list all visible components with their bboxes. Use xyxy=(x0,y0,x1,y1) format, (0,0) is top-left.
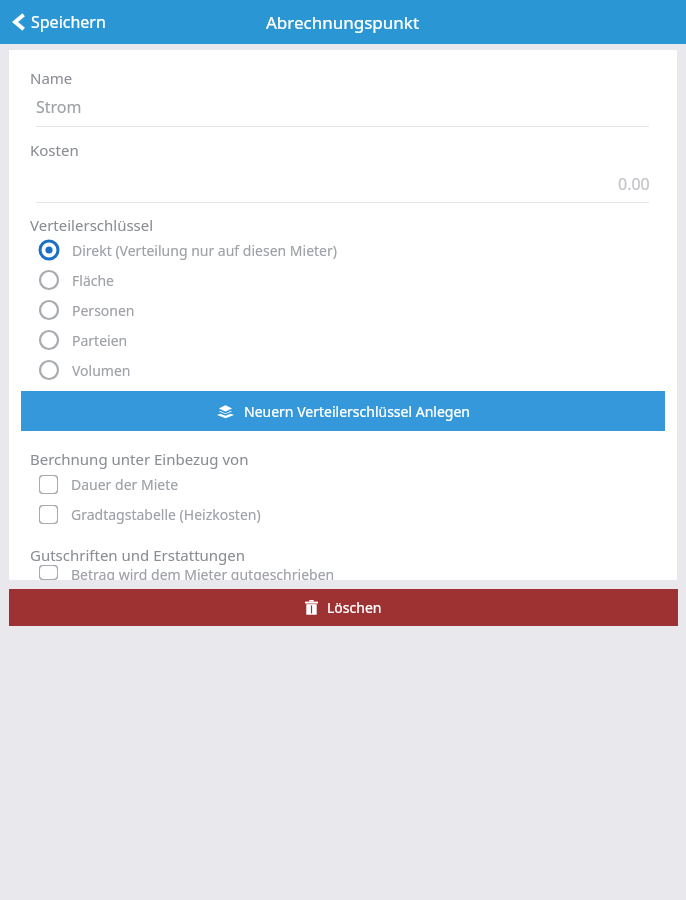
staticText: Name xyxy=(30,68,73,88)
staticText: Neuern Verteilerschlüssel Anlegen xyxy=(244,402,470,421)
staticText: Personen xyxy=(72,301,135,320)
staticText: Volumen xyxy=(72,361,131,380)
staticText: Speichern xyxy=(31,11,106,33)
staticText: Fläche xyxy=(72,271,114,290)
staticText: Abrechnungspunkt xyxy=(266,11,420,34)
button[interactable]: Volumen xyxy=(9,355,677,385)
button[interactable]: Layers xyxy=(21,391,665,431)
staticText: Berchnung unter Einbezug von xyxy=(30,449,249,469)
button[interactable]: Fläche xyxy=(9,265,677,295)
button[interactable]: Speichern xyxy=(9,5,110,39)
staticText: Gutschriften und Erstattungen xyxy=(30,545,246,565)
staticText: Gradtagstabelle (Heizkosten) xyxy=(71,505,261,524)
button[interactable]: Direkt (Verteilung nur auf diesen Mieter… xyxy=(9,235,677,265)
button[interactable]: Betrag wird dem Mieter gutgeschrieben xyxy=(9,565,677,580)
staticText: Löschen xyxy=(327,598,382,617)
other: Layers xyxy=(217,403,234,420)
staticText: Kosten xyxy=(30,140,79,160)
staticText: Dauer der Miete xyxy=(71,475,179,494)
staticText: Parteien xyxy=(72,331,128,350)
button[interactable]: Gradtagstabelle (Heizkosten) xyxy=(9,499,677,529)
staticText: Direkt (Verteilung nur auf diesen Mieter… xyxy=(72,241,337,260)
staticText: Verteilerschlüssel xyxy=(30,215,154,235)
button[interactable]: Personen xyxy=(9,295,677,325)
button[interactable]: Parteien xyxy=(9,325,677,355)
other: Delete xyxy=(305,600,318,616)
button[interactable]: Dauer der Miete xyxy=(9,469,677,499)
staticText: Strom xyxy=(36,96,82,118)
staticText: 0.00 xyxy=(618,173,650,195)
staticText: Betrag wird dem Mieter gutgeschrieben xyxy=(71,565,335,580)
button[interactable]: Delete xyxy=(9,589,678,626)
